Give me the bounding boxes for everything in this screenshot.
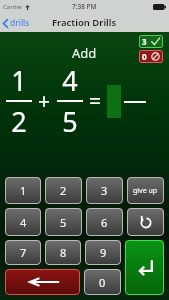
button[interactable]: drills — [0, 14, 36, 32]
button[interactable]: 8 — [45, 240, 81, 265]
staticText: drills — [10, 17, 30, 29]
staticText: 6 — [101, 215, 108, 230]
button[interactable]: 5 — [45, 208, 82, 236]
staticText: = — [89, 87, 102, 116]
button[interactable]: 9 — [85, 240, 121, 265]
staticText: Add — [72, 44, 97, 62]
staticText: give up — [133, 186, 158, 196]
button[interactable]: 3 — [139, 35, 163, 48]
staticText: 5 — [60, 215, 67, 230]
staticText: 3 — [142, 36, 147, 47]
staticText: 9 — [100, 245, 107, 260]
staticText: + — [38, 87, 51, 116]
staticText: 5 — [62, 103, 78, 140]
staticText: Fraction Drills — [52, 16, 117, 29]
staticText: 1 — [20, 183, 27, 198]
button[interactable]: give up — [127, 177, 164, 204]
button[interactable]: 2 — [45, 177, 82, 204]
staticText: 4 — [62, 62, 78, 99]
staticText: 0 — [99, 275, 106, 290]
staticText: 2 — [60, 183, 67, 198]
button[interactable]: 7 — [5, 240, 41, 265]
staticText: 8 — [60, 245, 67, 260]
button[interactable]: 1 — [5, 177, 41, 204]
staticText: 4 — [20, 215, 27, 230]
button[interactable]: Enter — [125, 240, 164, 295]
staticText: 0 — [142, 51, 147, 62]
button[interactable]: 3 — [86, 177, 123, 204]
button[interactable]: Undo — [127, 208, 164, 236]
staticText: 7 — [20, 245, 27, 260]
staticText: 2 — [11, 103, 27, 140]
staticText: 3 — [101, 183, 108, 198]
button[interactable]: 6 — [86, 208, 123, 236]
button[interactable]: Backspace — [5, 269, 80, 295]
button[interactable]: 4 — [5, 208, 41, 236]
button[interactable]: 0 — [84, 269, 121, 295]
staticText: Carrier — [3, 3, 23, 11]
staticText: 1 — [11, 62, 27, 99]
button[interactable]: 0 — [139, 50, 163, 63]
staticText: 7:38 PM — [72, 2, 97, 11]
